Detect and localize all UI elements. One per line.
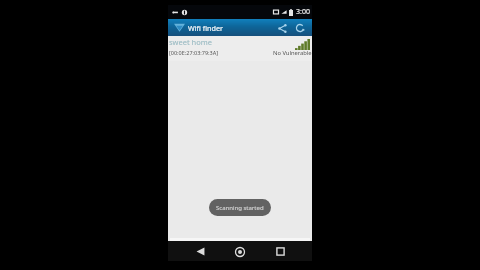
button[interactable]: Share (275, 21, 289, 35)
staticText: sweet home (169, 37, 213, 47)
button[interactable]: Recents (265, 242, 295, 261)
staticText: Scanning started (216, 204, 264, 212)
staticText: [00:0E:27:03:79:3A] (169, 49, 219, 56)
staticText: Wifi finder (188, 23, 223, 33)
button[interactable]: Scanning started (209, 199, 271, 216)
button[interactable]: Home (225, 242, 255, 261)
staticText: 3:00 (296, 7, 310, 17)
button[interactable]: Refresh (293, 21, 307, 35)
staticText: No Vulnerable (273, 49, 312, 57)
button[interactable]: Back (185, 242, 215, 261)
button[interactable]: sweet home (168, 36, 312, 61)
